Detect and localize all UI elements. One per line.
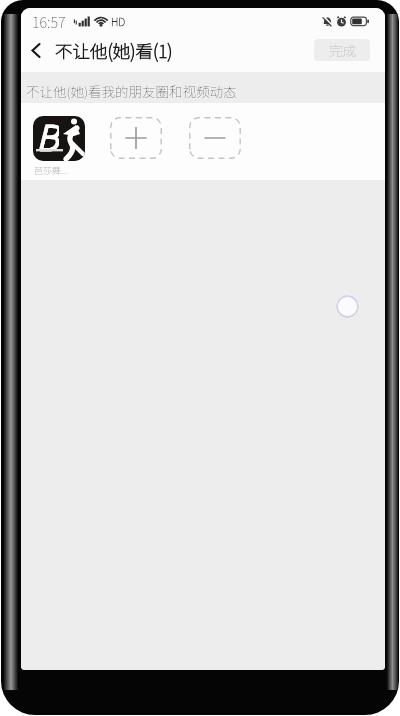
- button[interactable]: B: [33, 116, 85, 177]
- staticText: 完成: [329, 40, 356, 60]
- staticText: B: [37, 116, 59, 157]
- button[interactable]: [189, 117, 241, 159]
- staticText: 芭莎舞...: [34, 164, 68, 177]
- staticText: 不让他(她)看我的朋友圈和视频动态: [26, 81, 237, 101]
- staticText: B: [37, 116, 59, 156]
- button[interactable]: 完成: [314, 39, 370, 61]
- button[interactable]: [336, 295, 359, 318]
- staticText: 16:57: [32, 11, 66, 32]
- button[interactable]: [110, 117, 162, 159]
- staticText: HD: [111, 14, 126, 29]
- staticText: 不让他(她)看(1): [55, 38, 173, 63]
- button[interactable]: 不让他(她)看(1): [30, 38, 173, 63]
- staticText: B: [36, 116, 58, 156]
- staticText: 不让他(她)看(1): [55, 38, 173, 63]
